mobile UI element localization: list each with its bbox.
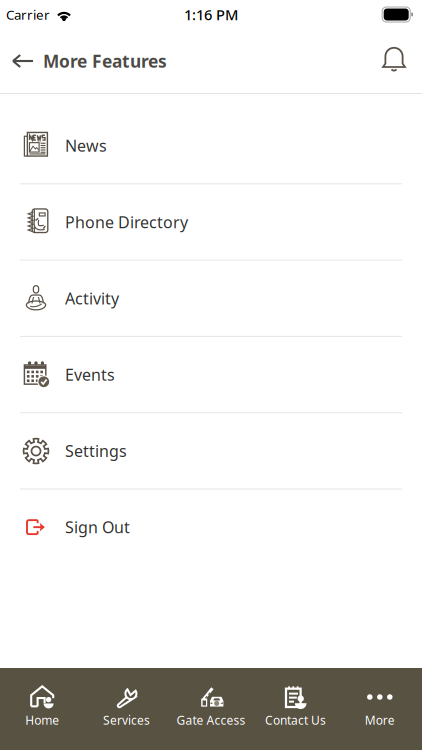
button[interactable]: Activity	[0, 261, 422, 336]
staticText: Services	[103, 712, 150, 728]
button[interactable]: News	[0, 108, 422, 183]
staticText: More	[365, 712, 395, 728]
staticText: More Features	[43, 49, 167, 72]
staticText: News	[65, 135, 107, 156]
button[interactable]: Contact Us	[253, 678, 338, 734]
staticText: Events	[65, 364, 115, 385]
button[interactable]: Notifications	[378, 41, 410, 81]
staticText: Home	[25, 712, 59, 728]
staticText: Carrier	[6, 6, 50, 23]
button[interactable]: More	[338, 678, 422, 734]
button[interactable]: Back	[8, 41, 42, 81]
button[interactable]: Sign Out	[0, 489, 422, 565]
staticText: Settings	[65, 440, 127, 461]
staticText: Phone Directory	[65, 211, 188, 232]
staticText: Activity	[65, 288, 119, 309]
staticText: 1:16 PM	[184, 5, 238, 24]
staticText: Gate Access	[176, 712, 245, 728]
button[interactable]: Services	[84, 678, 169, 734]
staticText: Contact Us	[265, 712, 326, 728]
button[interactable]: Home	[0, 678, 84, 734]
button[interactable]: Phone Directory	[0, 184, 422, 260]
button[interactable]: Settings	[0, 413, 422, 488]
button[interactable]: Gate Access	[169, 678, 253, 734]
staticText: Sign Out	[65, 516, 130, 538]
button[interactable]: Events	[0, 337, 422, 412]
